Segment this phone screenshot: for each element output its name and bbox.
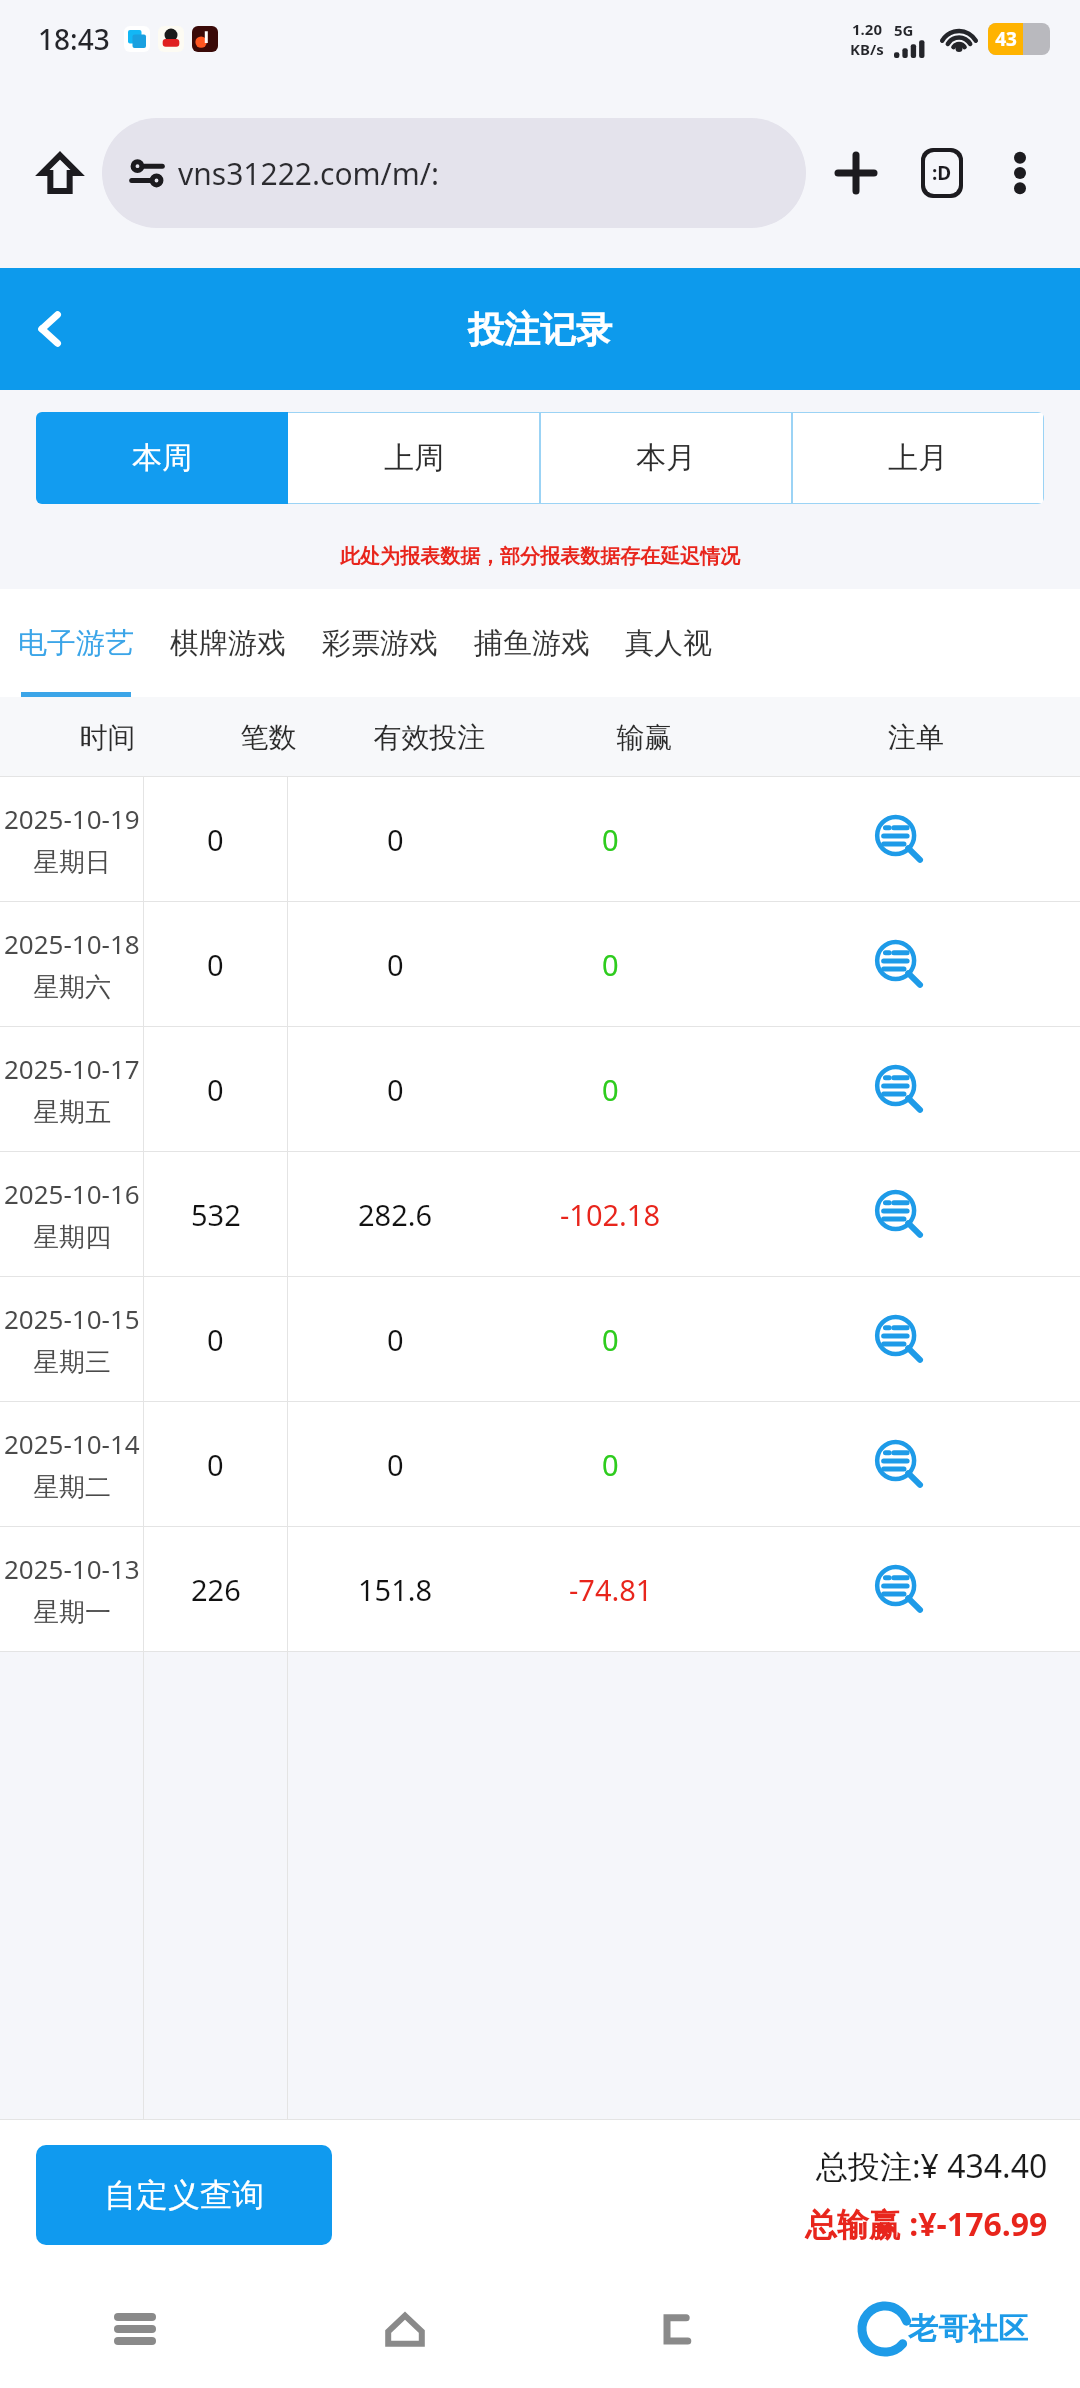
- staticText: 星期二: [33, 1471, 111, 1504]
- staticText: 老哥社区: [908, 2310, 1028, 2348]
- staticText: 0: [602, 1070, 619, 1109]
- staticText: 输赢: [537, 720, 752, 755]
- staticText: 1.20: [852, 19, 882, 39]
- staticText: 本周: [132, 439, 192, 477]
- button[interactable]: Back: [540, 2270, 810, 2388]
- button[interactable]: Tabs: [906, 137, 978, 209]
- button[interactable]: 查看注单: [718, 1027, 1080, 1152]
- button[interactable]: 本周: [36, 412, 288, 504]
- button[interactable]: 查看注单: [718, 777, 1080, 902]
- staticText: KB/s: [850, 39, 884, 59]
- button[interactable]: New tab: [820, 137, 892, 209]
- button[interactable]: 上周: [288, 412, 540, 504]
- staticText: 电子游艺: [18, 625, 134, 662]
- button[interactable]: Home: [28, 141, 92, 205]
- staticText: 上周: [384, 439, 444, 477]
- staticText: 棋牌游戏: [170, 625, 286, 662]
- staticText: 0: [602, 1320, 619, 1359]
- button[interactable]: Back: [0, 279, 100, 379]
- button[interactable]: Recents: [0, 2270, 270, 2388]
- button[interactable]: 本月: [540, 412, 792, 504]
- staticText: vns31222.com/m/:: [178, 153, 439, 194]
- staticText: 上月: [888, 439, 948, 477]
- staticText: 总投注:¥ 434.40: [816, 2144, 1048, 2188]
- button[interactable]: 查看注单: [718, 1152, 1080, 1277]
- staticText: 星期日: [33, 846, 111, 879]
- button[interactable]: 2025-10-15: [0, 1277, 1080, 1402]
- staticText: 0: [387, 820, 404, 859]
- staticText: 2025-10-13: [4, 1551, 140, 1586]
- staticText: 0: [602, 1445, 619, 1484]
- staticText: 彩票游戏: [322, 625, 438, 662]
- button[interactable]: 上月: [792, 412, 1044, 504]
- button[interactable]: 2025-10-13: [0, 1527, 1080, 1652]
- button[interactable]: 查看注单: [718, 1527, 1080, 1652]
- staticText: 2025-10-18: [4, 926, 140, 961]
- staticText: 0: [207, 820, 224, 859]
- staticText: 2025-10-17: [4, 1051, 140, 1086]
- button[interactable]: 查看注单: [718, 1402, 1080, 1527]
- staticText: 星期五: [33, 1096, 111, 1129]
- button[interactable]: 2025-10-14: [0, 1402, 1080, 1527]
- staticText: 532: [191, 1195, 241, 1234]
- button[interactable]: 彩票游戏: [304, 589, 456, 697]
- staticText: 0: [602, 945, 619, 984]
- staticText: 43: [988, 26, 1024, 52]
- staticText: 2025-10-14: [4, 1426, 140, 1461]
- staticText: 投注记录: [0, 307, 1080, 352]
- staticText: 真人视: [625, 625, 712, 662]
- staticText: 2025-10-16: [4, 1176, 140, 1211]
- button[interactable]: 查看注单: [718, 1277, 1080, 1402]
- button[interactable]: 捕鱼游戏: [456, 589, 608, 697]
- staticText: 18:43: [38, 20, 110, 58]
- staticText: 星期三: [33, 1346, 111, 1379]
- staticText: 0: [387, 1320, 404, 1359]
- staticText: 226: [191, 1570, 241, 1609]
- staticText: -102.18: [560, 1195, 661, 1234]
- staticText: 282.6: [358, 1195, 433, 1234]
- staticText: 0: [387, 1445, 404, 1484]
- staticText: 2025-10-15: [4, 1301, 140, 1336]
- staticText: 0: [387, 945, 404, 984]
- button[interactable]: 真人视: [608, 589, 728, 697]
- staticText: 0: [602, 820, 619, 859]
- staticText: 星期六: [33, 971, 111, 1004]
- button[interactable]: 2025-10-16: [0, 1152, 1080, 1277]
- button[interactable]: 2025-10-19: [0, 777, 1080, 902]
- staticText: 有效投注: [322, 720, 537, 755]
- staticText: 0: [207, 1445, 224, 1484]
- staticText: 时间: [0, 720, 215, 755]
- staticText: 注单: [752, 720, 1080, 755]
- button[interactable]: 自定义查询: [36, 2145, 332, 2245]
- staticText: 笔数: [215, 720, 322, 755]
- staticText: 自定义查询: [104, 2175, 264, 2215]
- staticText: 5G: [894, 20, 914, 40]
- staticText: 0: [387, 1070, 404, 1109]
- staticText: 此处为报表数据，部分报表数据存在延迟情况: [0, 544, 1080, 569]
- staticText: 本月: [636, 439, 696, 477]
- button[interactable]: 电子游艺: [0, 589, 152, 697]
- staticText: 总输赢 :¥-176.99: [805, 2202, 1048, 2246]
- staticText: 0: [207, 1070, 224, 1109]
- button[interactable]: 棋牌游戏: [152, 589, 304, 697]
- button[interactable]: More options: [988, 141, 1052, 205]
- button[interactable]: 2025-10-17: [0, 1027, 1080, 1152]
- staticText: 星期一: [33, 1596, 111, 1629]
- staticText: 捕鱼游戏: [474, 625, 590, 662]
- button[interactable]: 2025-10-18: [0, 902, 1080, 1027]
- staticText: :D: [932, 160, 952, 186]
- button[interactable]: 查看注单: [718, 902, 1080, 1027]
- staticText: 星期四: [33, 1221, 111, 1254]
- button[interactable]: vns31222.com/m/:: [102, 118, 806, 228]
- staticText: 151.8: [358, 1570, 433, 1609]
- button[interactable]: Home: [270, 2270, 540, 2388]
- staticText: -74.81: [569, 1570, 653, 1609]
- staticText: 2025-10-19: [4, 801, 140, 836]
- staticText: 0: [207, 945, 224, 984]
- staticText: 0: [207, 1320, 224, 1359]
